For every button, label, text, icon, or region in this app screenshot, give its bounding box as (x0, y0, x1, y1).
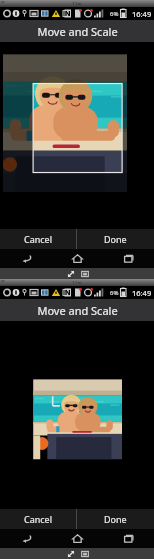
button[interactable]: Cancel (0, 509, 76, 529)
button[interactable]: Back (0, 529, 52, 548)
button[interactable]: Resize (65, 548, 76, 559)
staticText: 6% (110, 10, 119, 18)
button[interactable]: Done (77, 229, 154, 249)
staticText: Done (104, 233, 127, 245)
staticText: 16:49 (132, 288, 152, 298)
staticText: Done (104, 513, 127, 525)
button[interactable]: Done (77, 509, 154, 529)
staticText: 1.1m (72, 1, 82, 6)
button[interactable]: Cancel (0, 229, 76, 249)
staticText: Move and Scale (37, 24, 118, 39)
staticText: 1.1m (72, 280, 82, 285)
staticText: 16:49 (132, 9, 152, 19)
button[interactable]: Back (0, 249, 52, 268)
button[interactable]: Home (52, 249, 103, 268)
button[interactable]: Recent apps (103, 529, 154, 548)
staticText: Move and Scale (37, 303, 118, 318)
staticText: 6% (110, 289, 119, 297)
staticText: Cancel (24, 513, 53, 525)
button[interactable]: Screenshot (79, 268, 90, 279)
button[interactable]: Resize (65, 268, 76, 279)
button[interactable]: Recent apps (103, 249, 154, 268)
button[interactable]: Screenshot (79, 548, 90, 559)
staticText: Cancel (24, 233, 53, 245)
button[interactable]: Home (52, 529, 103, 548)
